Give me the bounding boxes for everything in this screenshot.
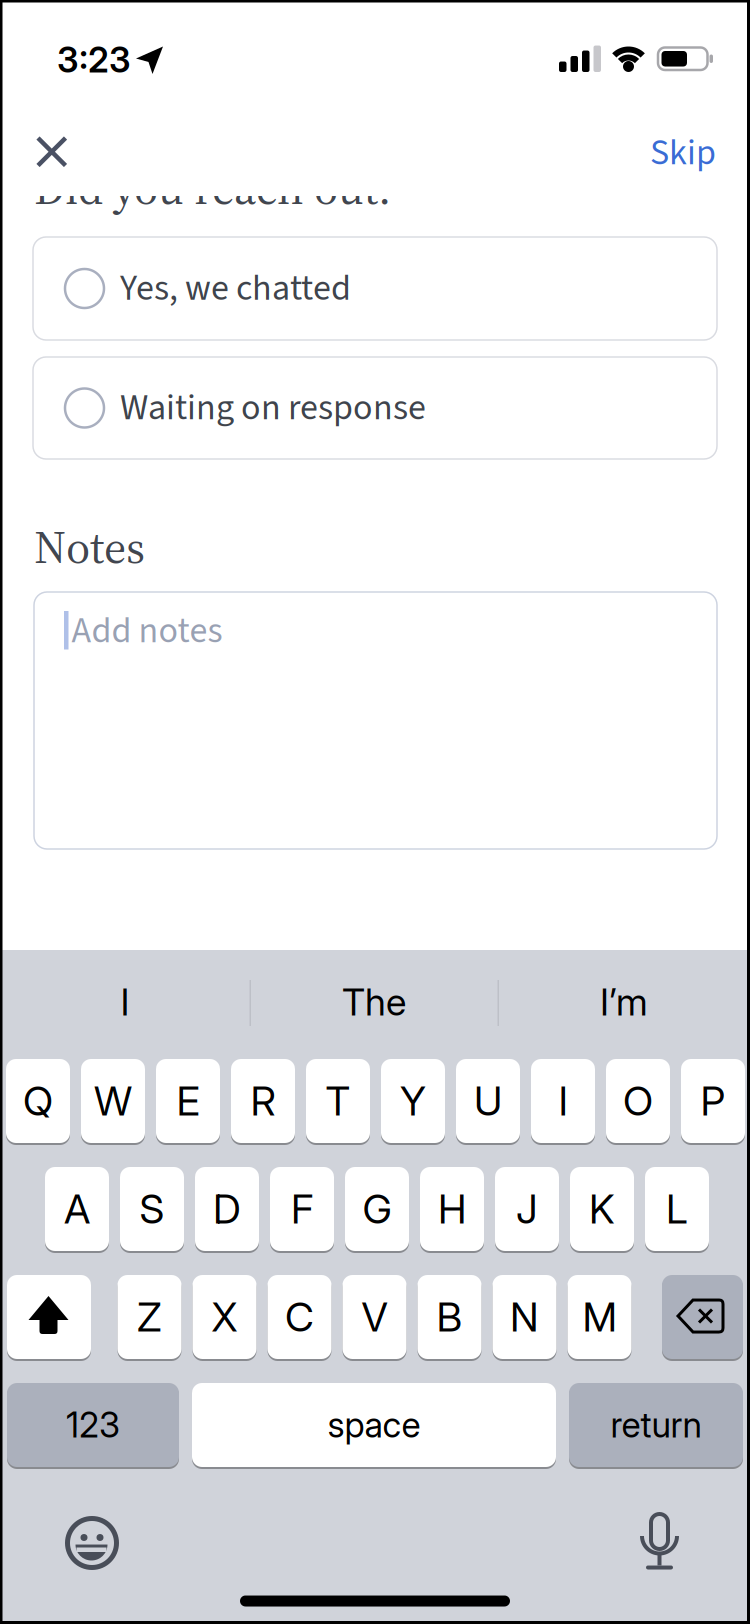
staticText: O: [623, 1077, 653, 1125]
staticText: The: [342, 979, 406, 1025]
button[interactable]: [62, 1513, 122, 1573]
staticText: Waiting on response: [120, 382, 426, 434]
button[interactable]: W: [81, 1058, 145, 1144]
button[interactable]: F: [270, 1166, 334, 1252]
button[interactable]: U: [456, 1058, 520, 1144]
staticText: R: [250, 1077, 275, 1125]
staticText: D: [213, 1185, 241, 1233]
button[interactable]: [7, 1274, 91, 1360]
button[interactable]: Add notes: [34, 592, 717, 849]
staticText: P: [700, 1077, 725, 1125]
staticText: C: [285, 1293, 314, 1341]
button[interactable]: Skip: [596, 118, 716, 188]
button[interactable]: O: [606, 1058, 670, 1144]
button[interactable]: A: [45, 1166, 109, 1252]
button[interactable]: R: [231, 1058, 295, 1144]
staticText: Q: [23, 1077, 53, 1125]
staticText: X: [211, 1293, 237, 1341]
staticText: V: [361, 1293, 387, 1341]
button[interactable]: G: [345, 1166, 409, 1252]
staticText: K: [589, 1185, 615, 1233]
button[interactable]: M: [567, 1274, 631, 1360]
button[interactable]: Waiting on response: [33, 357, 717, 459]
staticText: space: [327, 1404, 420, 1446]
button[interactable]: Q: [6, 1058, 70, 1144]
button[interactable]: I: [2, 957, 248, 1047]
button[interactable]: I: [531, 1058, 595, 1144]
staticText: Did you reach out?: [34, 157, 396, 219]
button[interactable]: V: [342, 1274, 406, 1360]
button[interactable]: H: [420, 1166, 484, 1252]
staticText: 123: [66, 1404, 120, 1446]
staticText: Z: [137, 1293, 162, 1341]
button[interactable]: [21, 121, 81, 181]
staticText: Yes, we chatted: [120, 263, 351, 314]
staticText: W: [94, 1077, 132, 1125]
button[interactable]: B: [417, 1274, 481, 1360]
button[interactable]: Z: [117, 1274, 181, 1360]
button[interactable]: return: [569, 1382, 743, 1468]
button[interactable]: T: [306, 1058, 370, 1144]
staticText: N: [510, 1293, 539, 1341]
button[interactable]: I’m: [502, 957, 746, 1047]
staticText: U: [474, 1077, 502, 1125]
staticText: Notes: [34, 516, 145, 578]
staticText: 3:23: [57, 39, 131, 81]
button[interactable]: [662, 1274, 743, 1360]
button[interactable]: Y: [381, 1058, 445, 1144]
button[interactable]: C: [267, 1274, 331, 1360]
button[interactable]: K: [570, 1166, 634, 1252]
staticText: L: [666, 1185, 688, 1233]
staticText: Add notes: [71, 605, 222, 657]
staticText: T: [325, 1077, 350, 1125]
staticText: Y: [400, 1077, 426, 1125]
staticText: I’m: [600, 979, 648, 1025]
button[interactable]: S: [120, 1166, 184, 1252]
staticText: I: [120, 979, 129, 1025]
staticText: B: [436, 1293, 462, 1341]
staticText: F: [291, 1185, 313, 1233]
button[interactable]: Yes, we chatted: [33, 237, 717, 340]
button[interactable]: L: [645, 1166, 709, 1252]
button[interactable]: D: [195, 1166, 259, 1252]
staticText: return: [610, 1404, 701, 1446]
staticText: S: [139, 1185, 164, 1233]
button[interactable]: X: [192, 1274, 256, 1360]
staticText: G: [362, 1185, 391, 1233]
button[interactable]: N: [492, 1274, 556, 1360]
button[interactable]: The: [252, 957, 496, 1047]
staticText: A: [64, 1185, 90, 1233]
button[interactable]: [629, 1505, 689, 1575]
button[interactable]: J: [495, 1166, 559, 1252]
staticText: J: [516, 1185, 538, 1233]
button[interactable]: 123: [7, 1382, 179, 1468]
button[interactable]: P: [681, 1058, 745, 1144]
staticText: M: [582, 1293, 616, 1341]
button[interactable]: E: [156, 1058, 220, 1144]
staticText: E: [176, 1077, 199, 1125]
staticText: H: [438, 1185, 466, 1233]
button[interactable]: space: [192, 1382, 556, 1468]
staticText: I: [558, 1077, 567, 1125]
staticText: Skip: [650, 127, 716, 179]
